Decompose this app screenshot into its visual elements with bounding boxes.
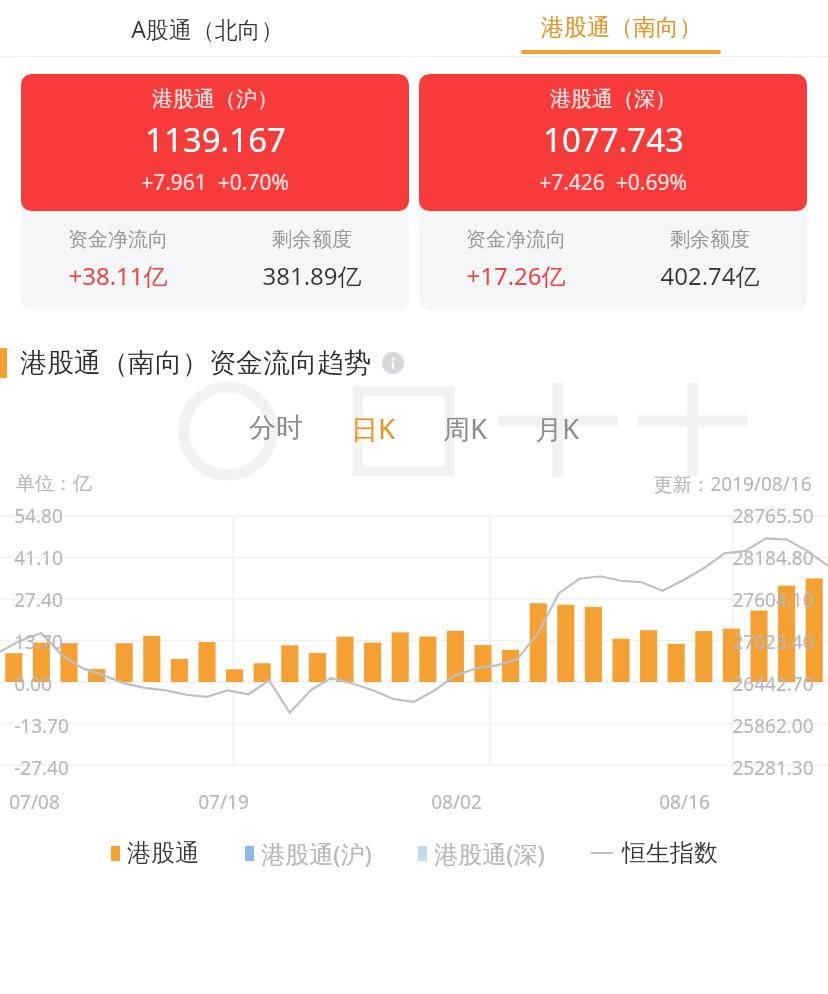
staticText: 25281.30 <box>732 755 814 781</box>
staticText: 1139.167 <box>145 117 286 162</box>
staticText: 25862.00 <box>732 713 814 739</box>
button[interactable]: 港股通 <box>111 838 199 868</box>
staticText: +7.426 +0.69% <box>539 168 687 197</box>
staticText: 港股通(沪) <box>261 837 372 870</box>
staticText: -13.70 <box>14 713 69 739</box>
staticText: 28765.50 <box>732 503 814 529</box>
staticText: 07/19 <box>198 789 249 815</box>
staticText: 资金净流向 <box>466 227 566 252</box>
staticText: -27.40 <box>14 755 69 781</box>
staticText: 26442.70 <box>732 671 814 697</box>
staticText: 08/02 <box>431 789 482 815</box>
button[interactable]: 港股通（南向） <box>414 0 828 57</box>
button[interactable]: 周K <box>437 404 493 453</box>
staticText: 港股通（南向）资金流向趋势 <box>20 346 371 380</box>
staticText: 402.74亿 <box>660 259 760 292</box>
button[interactable]: Information <box>381 351 405 375</box>
button[interactable]: 分时 <box>243 405 309 451</box>
staticText: 0.00 <box>14 671 52 697</box>
staticText: +17.26亿 <box>466 259 566 292</box>
staticText: 41.10 <box>14 545 63 571</box>
staticText: 剩余额度 <box>272 227 352 252</box>
staticText: 周K <box>443 410 487 447</box>
staticText: +38.11亿 <box>68 259 168 292</box>
staticText: 港股通（沪） <box>152 86 278 112</box>
staticText: 月K <box>535 410 579 447</box>
staticText: 08/16 <box>659 789 710 815</box>
staticText: 1077.743 <box>543 117 684 162</box>
staticText: 港股通(深) <box>434 837 545 870</box>
button[interactable]: 港股通（沪） <box>21 74 409 310</box>
staticText: +7.961 +0.70% <box>141 168 289 197</box>
staticText: 剩余额度 <box>670 227 750 252</box>
staticText: 13.70 <box>14 629 63 655</box>
staticText: 27023.40 <box>732 629 814 655</box>
button[interactable]: 港股通(沪) <box>245 837 372 870</box>
staticText: 更新：2019/08/16 <box>653 471 812 497</box>
button[interactable]: 港股通（深） <box>419 74 807 310</box>
button[interactable]: 港股通(深) <box>418 837 545 870</box>
button[interactable]: 月K <box>529 404 585 453</box>
button[interactable]: 日K <box>345 404 401 453</box>
button[interactable]: A股通（北向） <box>0 0 414 57</box>
staticText: 07/08 <box>9 789 60 815</box>
staticText: 27604.10 <box>732 587 814 613</box>
staticText: 54.80 <box>14 503 63 529</box>
staticText: 381.89亿 <box>262 259 362 292</box>
staticText: A股通（北向） <box>131 13 284 44</box>
staticText: 港股通（南向） <box>541 13 702 42</box>
staticText: 资金净流向 <box>68 227 168 252</box>
staticText: 27.40 <box>14 587 63 613</box>
staticText: 日K <box>351 410 395 447</box>
staticText: 分时 <box>249 411 303 445</box>
staticText: 恒生指数 <box>622 838 718 868</box>
staticText: 港股通（深） <box>550 86 676 112</box>
staticText: 28184.80 <box>732 545 814 571</box>
staticText: 单位：亿 <box>16 472 92 496</box>
button[interactable]: 恒生指数 <box>591 838 718 868</box>
staticText: 港股通 <box>127 838 199 868</box>
